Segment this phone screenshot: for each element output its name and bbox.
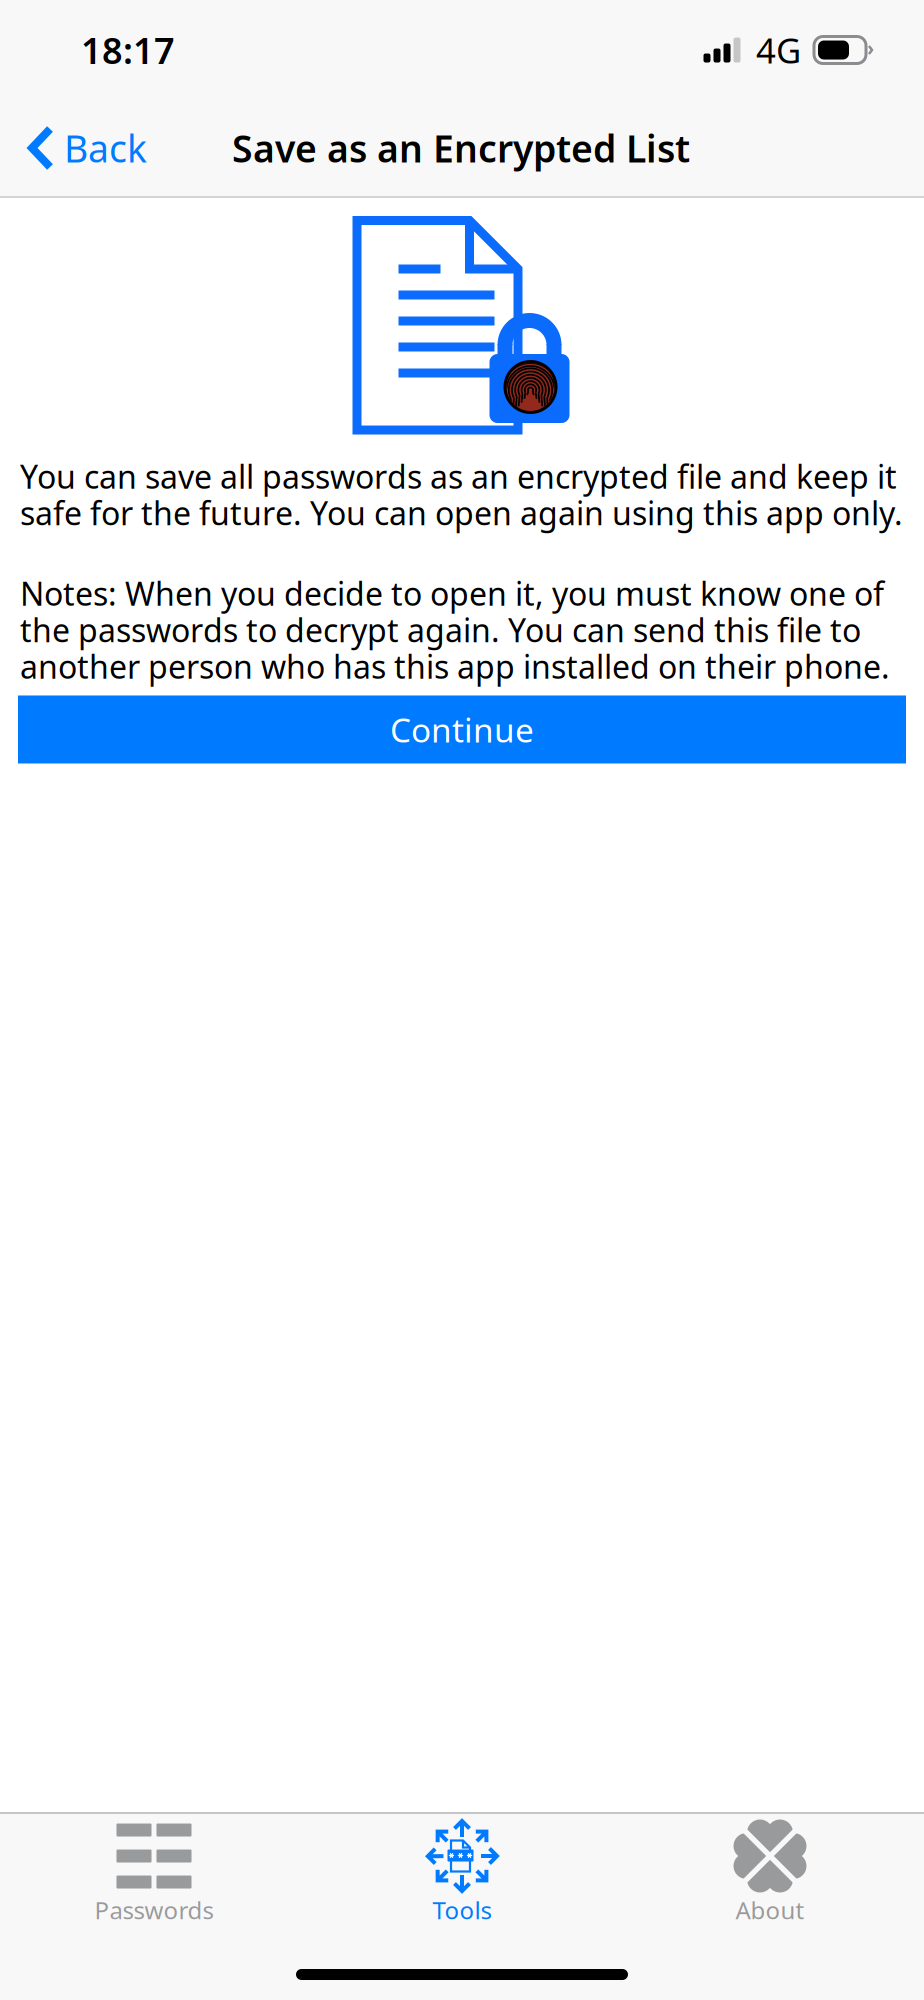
staticText: Save as an Encrypted List xyxy=(232,123,690,173)
staticText: About xyxy=(735,1894,804,1926)
button[interactable]: Tools xyxy=(308,1814,616,1926)
button[interactable]: Back xyxy=(0,111,165,185)
staticText: You can save all passwords as an encrypt… xyxy=(20,455,903,534)
staticText: Passwords xyxy=(94,1894,213,1926)
staticText: Tools xyxy=(432,1894,491,1926)
button[interactable]: Passwords xyxy=(0,1814,308,1926)
staticText: Continue xyxy=(390,707,534,752)
staticText: 18:17 xyxy=(81,26,175,74)
button[interactable]: Continue xyxy=(18,695,906,763)
staticText: 4G xyxy=(756,27,801,73)
staticText: Notes: When you decide to open it, you m… xyxy=(20,572,890,687)
button[interactable]: About xyxy=(616,1814,924,1926)
staticText: Back xyxy=(64,123,147,173)
